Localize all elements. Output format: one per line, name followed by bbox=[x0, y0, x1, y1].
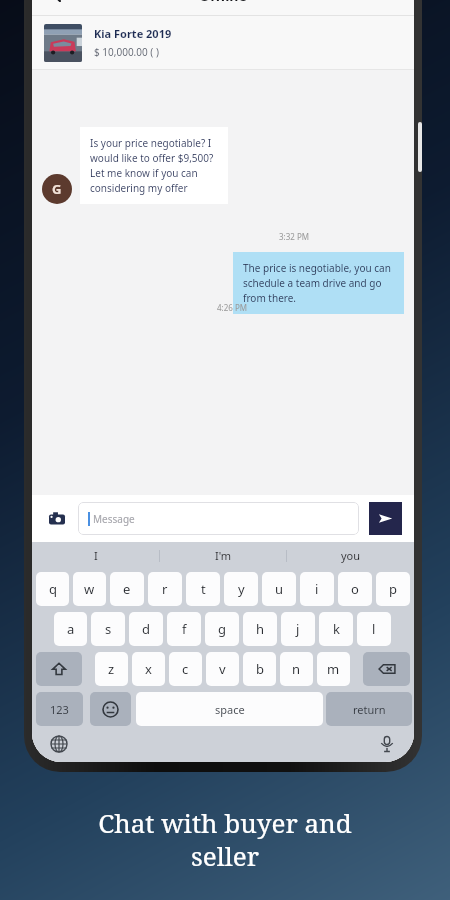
staticText: 3:32 PM bbox=[279, 231, 310, 242]
staticText: space bbox=[215, 702, 245, 717]
staticText: 123 bbox=[50, 702, 69, 717]
staticText: G bbox=[52, 180, 62, 198]
button[interactable]: h bbox=[243, 612, 277, 646]
button[interactable]: c bbox=[169, 652, 202, 686]
staticText: you bbox=[341, 548, 361, 563]
staticText: z bbox=[108, 660, 115, 678]
button[interactable]: Numbers bbox=[36, 692, 83, 726]
button[interactable]: Kia Forte 2019 bbox=[32, 16, 414, 69]
staticText: I bbox=[94, 548, 98, 563]
button[interactable]: Emoji bbox=[90, 692, 131, 726]
button[interactable]: v bbox=[206, 652, 239, 686]
button[interactable]: m bbox=[317, 652, 350, 686]
button[interactable]: return bbox=[326, 692, 412, 726]
button[interactable]: f bbox=[167, 612, 201, 646]
staticText: Message bbox=[93, 512, 135, 526]
staticText: I'm bbox=[215, 548, 232, 563]
button[interactable]: Voice input bbox=[374, 731, 400, 757]
staticText: Chat with buyer and seller bbox=[24, 805, 426, 874]
button[interactable]: l bbox=[357, 612, 391, 646]
staticText: $ 10,000.00 ( ) bbox=[94, 45, 159, 59]
staticText: return bbox=[353, 702, 386, 717]
button[interactable]: w bbox=[73, 572, 106, 606]
staticText: e bbox=[123, 580, 131, 598]
staticText: h bbox=[256, 620, 265, 638]
button[interactable]: Message bbox=[78, 502, 359, 535]
staticText: t bbox=[201, 580, 206, 598]
button[interactable]: y bbox=[224, 572, 258, 606]
staticText: x bbox=[145, 660, 152, 678]
staticText: b bbox=[256, 660, 264, 678]
staticText: i bbox=[315, 580, 319, 598]
staticText: j bbox=[296, 620, 300, 638]
staticText: r bbox=[162, 580, 168, 598]
button[interactable]: Back bbox=[38, 0, 76, 14]
button[interactable]: e bbox=[110, 572, 144, 606]
button[interactable]: Shift bbox=[36, 652, 82, 686]
button[interactable]: d bbox=[129, 612, 163, 646]
button[interactable]: x bbox=[132, 652, 165, 686]
staticText: Is your price negotiable? I would like t… bbox=[90, 136, 218, 195]
button[interactable]: a bbox=[54, 612, 87, 646]
button[interactable]: p bbox=[376, 572, 410, 606]
staticText: n bbox=[292, 660, 301, 678]
button[interactable]: i bbox=[300, 572, 334, 606]
button[interactable]: I bbox=[32, 542, 160, 569]
button[interactable]: Is your price negotiable? I would like t… bbox=[80, 127, 228, 204]
staticText: v bbox=[219, 660, 226, 678]
button[interactable]: k bbox=[319, 612, 353, 646]
staticText: o bbox=[351, 580, 359, 598]
staticText: Offline bbox=[199, 0, 247, 5]
button[interactable]: b bbox=[243, 652, 276, 686]
staticText: q bbox=[49, 580, 57, 598]
button[interactable]: t bbox=[186, 572, 220, 606]
button[interactable]: g bbox=[205, 612, 239, 646]
staticText: 4:26 PM bbox=[217, 302, 248, 313]
staticText: The price is negotiable, you can schedul… bbox=[243, 261, 394, 305]
button[interactable]: r bbox=[148, 572, 182, 606]
staticText: m bbox=[327, 660, 340, 678]
button[interactable]: z bbox=[95, 652, 128, 686]
button[interactable]: Send bbox=[369, 502, 402, 535]
button[interactable]: s bbox=[91, 612, 125, 646]
staticText: p bbox=[389, 580, 397, 598]
button[interactable]: u bbox=[262, 572, 296, 606]
staticText: g bbox=[218, 620, 226, 638]
button[interactable]: space bbox=[136, 692, 323, 726]
staticText: l bbox=[372, 620, 376, 638]
button[interactable]: n bbox=[280, 652, 313, 686]
staticText: w bbox=[84, 580, 95, 598]
staticText: c bbox=[182, 660, 189, 678]
staticText: k bbox=[333, 620, 340, 638]
button[interactable]: Change keyboard language bbox=[46, 731, 72, 757]
staticText: s bbox=[105, 620, 112, 638]
staticText: Kia Forte 2019 bbox=[94, 26, 172, 41]
staticText: u bbox=[275, 580, 284, 598]
button[interactable]: you bbox=[287, 542, 414, 569]
staticText: a bbox=[67, 620, 75, 638]
button[interactable]: o bbox=[338, 572, 372, 606]
button[interactable]: The price is negotiable, you can schedul… bbox=[233, 252, 404, 314]
button[interactable]: q bbox=[36, 572, 69, 606]
button[interactable]: Attach photo bbox=[44, 506, 70, 532]
staticText: d bbox=[142, 620, 150, 638]
button[interactable]: Avatar G bbox=[42, 174, 72, 204]
staticText: y bbox=[238, 580, 245, 598]
button[interactable]: j bbox=[281, 612, 315, 646]
staticText: f bbox=[182, 620, 187, 638]
button[interactable]: I'm bbox=[160, 542, 287, 569]
button[interactable]: Backspace bbox=[363, 652, 410, 686]
